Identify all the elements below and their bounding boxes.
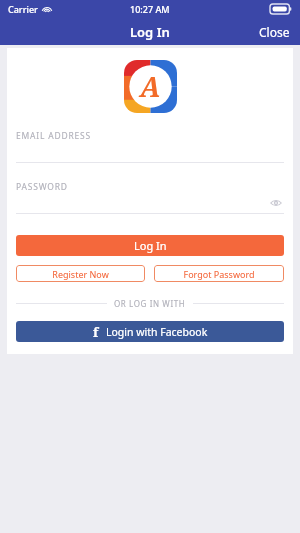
staticText: OR LOG IN WITH [114, 298, 186, 309]
staticText: Login with Facebook [106, 325, 208, 339]
button[interactable]: Log In [16, 235, 284, 256]
button[interactable]: App logo [124, 60, 177, 113]
button[interactable]: Register Now [16, 265, 145, 282]
staticText: Log In [130, 23, 170, 41]
staticText: Carrier [8, 3, 38, 15]
staticText: f [93, 323, 99, 341]
staticText: Close [259, 24, 290, 40]
button[interactable]: f [16, 321, 284, 342]
staticText: PASSWORD [16, 181, 68, 193]
staticText: Register Now [52, 268, 109, 280]
staticText: EMAIL ADDRESS [16, 130, 92, 142]
button[interactable]: Show password [268, 195, 284, 211]
button[interactable]: Forgot Password [154, 265, 284, 282]
button[interactable]: Close [249, 20, 300, 44]
staticText: Log In [134, 238, 167, 253]
staticText: Forgot Password [183, 268, 255, 280]
staticText: A [140, 68, 161, 105]
staticText: 10:27 AM [130, 3, 170, 15]
